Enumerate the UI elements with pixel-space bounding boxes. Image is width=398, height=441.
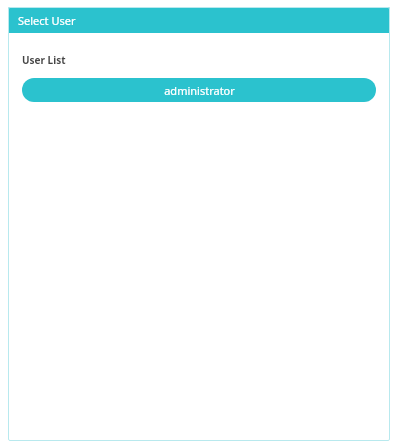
button[interactable]: Select User — [8, 7, 390, 33]
button[interactable]: administrator — [22, 78, 376, 102]
staticText: User List — [22, 53, 66, 67]
staticText: administrator — [164, 83, 235, 98]
staticText: Select User — [18, 13, 76, 28]
